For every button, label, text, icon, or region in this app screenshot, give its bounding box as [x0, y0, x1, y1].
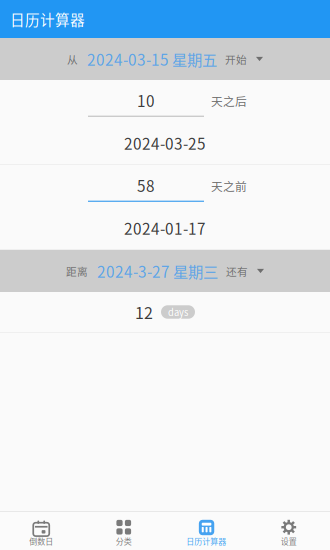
staticText: 倒数日	[29, 535, 53, 547]
staticText: 从	[67, 51, 78, 67]
button[interactable]: 倒数日	[0, 512, 82, 550]
staticText: 距离	[66, 263, 88, 279]
staticText: 2024-3-27 星期三	[97, 260, 218, 282]
staticText: days	[168, 305, 188, 319]
staticText: 10	[137, 89, 155, 111]
button[interactable]: 设置	[247, 512, 330, 550]
staticText: 58	[137, 174, 155, 196]
staticText: 设置	[281, 535, 297, 547]
staticText: 开始	[225, 51, 247, 67]
staticText: 日历计算器	[10, 8, 85, 30]
staticText: 分类	[116, 535, 132, 547]
staticText: 天之前	[211, 177, 247, 194]
staticText: 2024-03-25	[124, 132, 206, 154]
staticText: 天之后	[211, 92, 247, 109]
staticText: 还有	[226, 263, 248, 279]
staticText: 12	[135, 300, 153, 324]
button[interactable]: 日历计算器	[165, 512, 247, 550]
button[interactable]: 10	[88, 85, 204, 117]
button[interactable]: 从	[0, 38, 330, 80]
staticText: 2024-03-15 星期五	[87, 48, 217, 70]
staticText: 日历计算器	[186, 535, 226, 547]
staticText: 2024-01-17	[124, 217, 206, 239]
button[interactable]: 距离	[0, 250, 330, 292]
button[interactable]: 58	[88, 170, 204, 202]
button[interactable]: 分类	[82, 512, 165, 550]
